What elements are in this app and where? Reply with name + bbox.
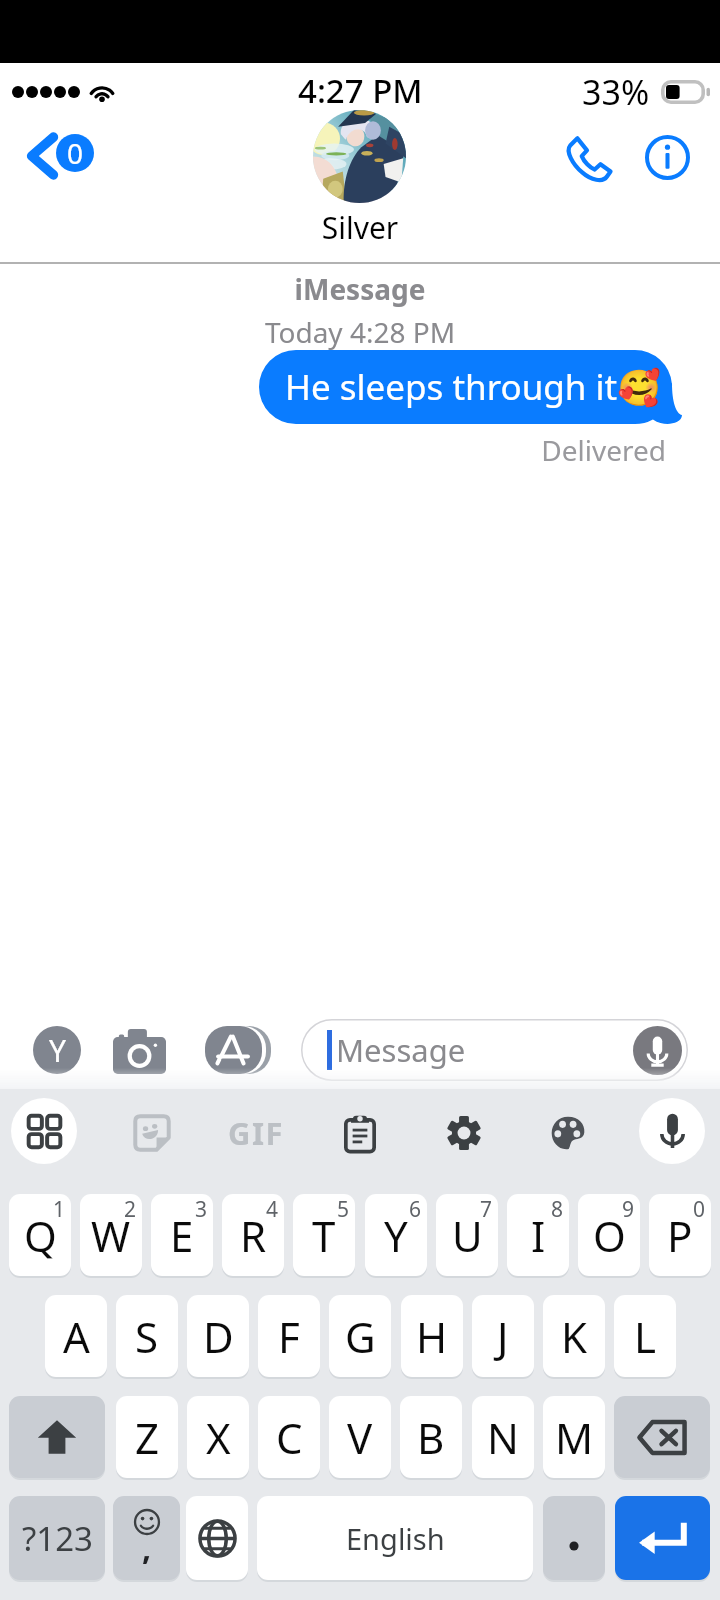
staticText: English (346, 1519, 445, 1558)
staticText: 1 (53, 1195, 66, 1224)
button[interactable]: ?123 (9, 1496, 105, 1580)
button[interactable]: Themes (534, 1099, 602, 1167)
staticText: F (278, 1308, 300, 1365)
staticText: 5 (337, 1195, 350, 1224)
button[interactable]: Back (18, 122, 106, 190)
button[interactable]: Backspace (614, 1396, 710, 1478)
button[interactable]: Y (365, 1194, 427, 1276)
staticText: 9 (622, 1195, 635, 1224)
staticText: H (416, 1308, 448, 1365)
staticText: S (135, 1308, 159, 1365)
button[interactable]: U (436, 1194, 498, 1276)
staticText: 6 (409, 1195, 422, 1224)
staticText: , (142, 1526, 152, 1570)
button[interactable]: Camera (113, 1029, 166, 1074)
staticText: C (276, 1409, 303, 1466)
staticText: Y (49, 1030, 66, 1071)
button[interactable]: GIF (222, 1099, 290, 1167)
staticText: He sleeps through it🥰 (285, 363, 661, 411)
button[interactable]: Emoji (113, 1496, 180, 1580)
staticText: Today 4:28 PM (0, 313, 720, 351)
button[interactable]: App Store (205, 1026, 271, 1074)
button[interactable]: I (507, 1194, 569, 1276)
staticText: N (487, 1409, 519, 1466)
button[interactable]: W (80, 1194, 142, 1276)
staticText: D (203, 1308, 234, 1365)
staticText: ?123 (22, 1516, 93, 1561)
staticText: 4 (266, 1195, 279, 1224)
button[interactable]: T (293, 1194, 355, 1276)
staticText: K (561, 1308, 587, 1365)
staticText: 4:27 PM (298, 68, 423, 113)
button[interactable]: Stickers (118, 1099, 186, 1167)
button[interactable]: A (45, 1295, 107, 1377)
button[interactable]: Change language (186, 1496, 248, 1580)
button[interactable]: J (472, 1295, 534, 1377)
staticText: X (206, 1409, 231, 1466)
button[interactable]: D (187, 1295, 249, 1377)
button[interactable]: C (258, 1396, 320, 1478)
staticText: Silver (0, 207, 720, 248)
staticText: 2 (124, 1195, 137, 1224)
staticText: T (312, 1207, 336, 1264)
button[interactable]: V (329, 1396, 391, 1478)
button[interactable]: S (116, 1295, 178, 1377)
button[interactable]: Q (9, 1194, 71, 1276)
button[interactable]: Message (301, 1019, 688, 1081)
button[interactable]: Shift (9, 1396, 105, 1478)
staticText: Y (384, 1207, 408, 1264)
button[interactable]: Details (631, 121, 703, 193)
button[interactable]: Clipboard (326, 1099, 394, 1167)
button[interactable]: M (543, 1396, 605, 1478)
button[interactable]: O (578, 1194, 640, 1276)
staticText: Z (135, 1409, 160, 1466)
staticText: B (417, 1409, 445, 1466)
staticText: 0 (693, 1195, 706, 1224)
button[interactable]: G (329, 1295, 391, 1377)
button[interactable]: N (472, 1396, 534, 1478)
staticText: V (347, 1409, 373, 1466)
staticText: A (63, 1308, 90, 1365)
button[interactable]: Space (257, 1496, 533, 1580)
button[interactable]: Enter (615, 1496, 710, 1580)
staticText: L (634, 1308, 657, 1365)
button[interactable]: B (400, 1396, 462, 1478)
staticText: O (593, 1207, 626, 1264)
button[interactable]: K (543, 1295, 605, 1377)
staticText: M (555, 1409, 594, 1466)
button[interactable]: L (614, 1295, 676, 1377)
staticText: E (170, 1207, 194, 1264)
staticText: 3 (195, 1195, 208, 1224)
staticText: 7 (480, 1195, 493, 1224)
staticText: W (91, 1207, 131, 1264)
staticText: Q (24, 1207, 57, 1264)
button[interactable]: Dictate (633, 1026, 682, 1075)
button[interactable]: Voice input (639, 1098, 705, 1164)
staticText: 8 (551, 1195, 564, 1224)
button[interactable]: He sleeps through it🥰 (259, 350, 682, 424)
staticText: G (345, 1308, 376, 1365)
button[interactable]: P (649, 1194, 711, 1276)
button[interactable]: Keyboard menu (11, 1098, 77, 1164)
button[interactable]: Call (551, 122, 623, 194)
staticText: R (240, 1207, 267, 1264)
staticText: J (497, 1308, 509, 1365)
button[interactable]: Settings (430, 1099, 498, 1167)
button[interactable]: H (401, 1295, 463, 1377)
staticText: Delivered (0, 431, 666, 469)
button[interactable]: F (258, 1295, 320, 1377)
staticText: 33% (582, 69, 650, 115)
staticText: P (667, 1207, 693, 1264)
button[interactable]: R (222, 1194, 284, 1276)
staticText: 0 (67, 134, 84, 172)
button[interactable]: App shortcut (33, 1026, 81, 1074)
staticText: Message (336, 1029, 466, 1071)
staticText: U (452, 1207, 483, 1264)
button[interactable]: Contact photo (313, 110, 406, 203)
button[interactable]: Z (116, 1396, 178, 1478)
button[interactable]: Period (543, 1496, 605, 1580)
button[interactable]: X (187, 1396, 249, 1478)
staticText: iMessage (0, 270, 720, 308)
button[interactable]: E (151, 1194, 213, 1276)
staticText: I (531, 1207, 546, 1264)
